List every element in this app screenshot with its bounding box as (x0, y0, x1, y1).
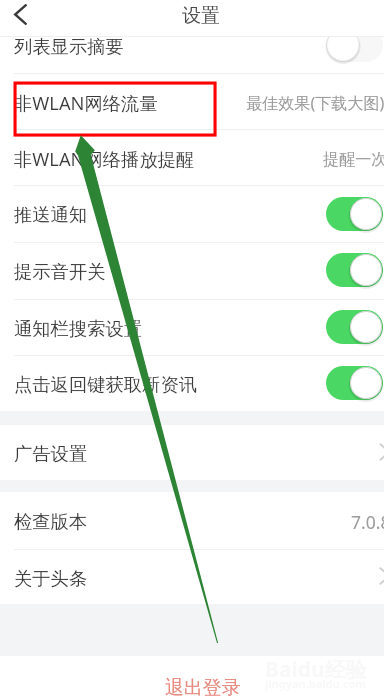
button[interactable]: 关于头条 (0, 549, 384, 605)
staticText: 退出登录 (165, 676, 241, 700)
button[interactable]: 广告设置 (0, 425, 384, 480)
button[interactable]: 非WLAN网络播放提醒 (0, 129, 384, 185)
button[interactable]: Disabled (326, 28, 383, 62)
staticText: 提醒一次 (323, 149, 384, 169)
staticText: 列表显示摘要 (14, 35, 124, 58)
button[interactable]: 推送通知 (0, 185, 384, 242)
staticText: 7.0.89 (351, 510, 384, 534)
staticText: 关于头条 (14, 567, 88, 590)
other: Open (379, 567, 384, 585)
staticText: 检查版本 (14, 510, 88, 533)
staticText: 通知栏搜索设置 (14, 317, 143, 340)
staticText: 广告设置 (14, 442, 88, 465)
button[interactable]: 退出登录 (0, 657, 384, 700)
other: Open (379, 443, 384, 461)
staticText: 非WLAN网络播放提醒 (14, 146, 195, 171)
staticText: 推送通知 (14, 203, 88, 226)
staticText: 设置 (182, 4, 220, 28)
staticText: 提示音开关 (14, 260, 106, 283)
button[interactable]: Back (14, 4, 27, 25)
button[interactable]: Enabled (326, 197, 383, 231)
button[interactable]: Enabled (326, 366, 383, 400)
staticText: 非WLAN网络流量 (14, 90, 158, 115)
button[interactable]: Enabled (326, 310, 383, 344)
staticText: 点击返回键获取新资讯 (14, 373, 197, 396)
button[interactable]: Enabled (326, 253, 383, 287)
staticText: Baidu经验 (265, 655, 367, 684)
button[interactable]: 列表显示摘要 (0, 17, 384, 73)
button[interactable]: 点击返回键获取新资讯 (0, 355, 384, 411)
button[interactable]: 提示音开关 (0, 242, 384, 299)
staticText: 最佳效果(下载大图) (246, 92, 384, 114)
button[interactable]: 非WLAN网络流量 (0, 73, 384, 129)
button[interactable]: 检查版本 (0, 492, 384, 549)
button[interactable]: 通知栏搜索设置 (0, 299, 384, 356)
